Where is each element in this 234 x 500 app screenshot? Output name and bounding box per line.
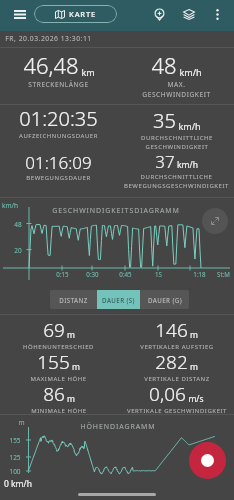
staticText: m xyxy=(190,361,198,373)
staticText: km/h xyxy=(179,66,202,78)
staticText: m xyxy=(67,393,75,405)
staticText: km/h xyxy=(178,120,201,132)
staticText: DISTANZ xyxy=(59,296,88,304)
staticText: m xyxy=(18,418,25,427)
staticText: 86 xyxy=(43,381,65,407)
staticText: 155 xyxy=(37,349,70,375)
staticText: 0:30 xyxy=(86,270,99,278)
staticText: STRECKENLÄNGE xyxy=(28,80,89,89)
staticText: DURCHSCHNITTLICHE BEWEGUNGSGESCHWINDIGKE… xyxy=(124,173,229,190)
staticText: VERTIKALE DISTANZ xyxy=(144,375,210,383)
staticText: MAXIMALE HÖHE xyxy=(30,375,87,383)
staticText: DURCHSCHNITTLICHE GESCHWINDIGKEIT xyxy=(141,134,213,151)
staticText: DAUER (S) xyxy=(102,296,135,304)
staticText: km/h xyxy=(2,201,18,210)
button[interactable]: DAUER (S) xyxy=(97,290,140,309)
staticText: 1:18 xyxy=(193,270,206,278)
button[interactable]: DISTANZ xyxy=(50,290,97,309)
staticText: m xyxy=(190,329,198,341)
staticText: m/s xyxy=(188,393,204,405)
staticText: GESCHWINDIGKEITSDIAGRAMM xyxy=(52,206,180,216)
staticText: 48 xyxy=(14,220,22,229)
staticText: m xyxy=(67,329,75,341)
staticText: BEWEGUNGSDAUER xyxy=(26,174,91,182)
button[interactable]: DAUER (G) xyxy=(140,290,189,309)
staticText: 125 xyxy=(9,453,21,462)
staticText: 01:16:09 xyxy=(25,151,92,174)
staticText: 69 xyxy=(43,317,65,343)
staticText: 37 xyxy=(155,150,175,173)
staticText: 146 xyxy=(155,317,188,343)
staticText: KARTE xyxy=(69,9,96,19)
staticText: MINIMALE HÖHE xyxy=(31,407,87,415)
staticText: St:M xyxy=(217,270,230,278)
staticText: 20 xyxy=(14,246,22,255)
button[interactable]: KARTE xyxy=(34,5,117,23)
staticText: m xyxy=(72,361,80,373)
staticText: 155 xyxy=(9,436,21,445)
staticText: 01:20:35 xyxy=(19,105,98,132)
staticText: HÖHENUNTERSCHIED xyxy=(23,343,94,351)
staticText: 1S xyxy=(155,270,162,278)
button[interactable]: My location xyxy=(146,0,173,28)
staticText: 282 xyxy=(155,349,188,375)
staticText: 46,48 xyxy=(23,50,79,80)
staticText: 0:15 xyxy=(56,270,69,278)
staticText: km xyxy=(81,66,95,78)
staticText: 48 xyxy=(151,50,177,80)
button[interactable]: Expand chart xyxy=(202,208,228,234)
button[interactable]: Map layers xyxy=(175,0,202,28)
staticText: 100 xyxy=(9,467,21,476)
staticText: MAX. GESCHWINDIGKEIT xyxy=(142,80,211,99)
staticText: VERTIKALER AUFSTIEG xyxy=(140,343,214,351)
staticText: AUFZEICHNUNGSDAUER xyxy=(19,132,98,140)
staticText: km/h xyxy=(177,159,198,171)
staticText: 35 xyxy=(153,107,176,134)
staticText: FR, 20.03.2026 13:30:11 xyxy=(5,34,92,43)
button[interactable]: More options xyxy=(205,0,230,28)
staticText: VERTIKALE GESCHWINDIGKEIT xyxy=(127,407,227,415)
staticText: 0 km/h xyxy=(4,478,32,490)
staticText: 0,06 xyxy=(149,381,186,407)
button[interactable]: Menu xyxy=(6,0,34,28)
button[interactable]: Start recording xyxy=(189,442,226,479)
staticText: DAUER (G) xyxy=(148,296,182,304)
staticText: HÖHENDIAGRAMM xyxy=(80,422,156,432)
staticText: 0:45 xyxy=(119,270,132,278)
